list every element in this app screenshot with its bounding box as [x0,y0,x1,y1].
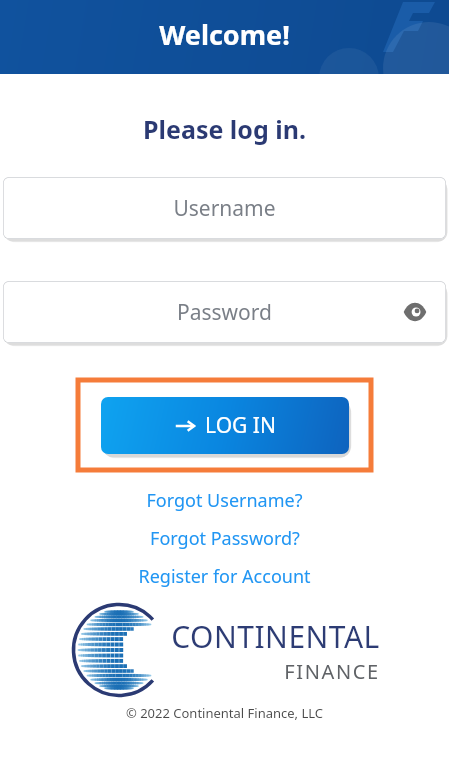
staticText: Password [177,298,272,327]
staticText: Welcome! [159,16,290,53]
button[interactable]: Forgot Password? [0,526,449,551]
staticText: © 2022 Continental Finance, LLC [0,704,449,722]
button[interactable]: Show password [402,299,428,325]
button[interactable]: Register for Account [0,564,449,589]
button[interactable]: Username [3,177,446,239]
staticText: Forgot Password? [150,526,300,551]
staticText: Username [173,194,276,223]
button[interactable]: Password [3,281,446,343]
staticText: Please log in. [0,112,449,146]
staticText: LOG IN [205,411,276,440]
button[interactable]: Forgot Username? [0,488,449,513]
button[interactable]: LOG IN [101,397,349,454]
staticText: Forgot Username? [146,488,303,513]
staticText: CONTINENTAL [171,616,380,657]
staticText: FINANCE [284,658,380,685]
staticText: Register for Account [138,564,311,589]
